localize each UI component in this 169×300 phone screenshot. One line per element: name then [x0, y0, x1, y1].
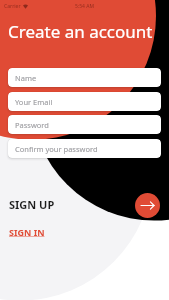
staticText: Name — [15, 73, 37, 83]
button[interactable]: Your Email — [8, 92, 161, 111]
button[interactable]: Name — [8, 68, 161, 87]
button[interactable]: Password — [8, 115, 161, 134]
staticText: Confirm your password — [15, 144, 98, 154]
button[interactable]: SIGN UP — [8, 196, 56, 213]
staticText: Password — [15, 120, 49, 130]
button[interactable]: Continue — [135, 193, 160, 218]
button[interactable]: SIGN IN — [8, 225, 46, 239]
staticText: Your Email — [15, 97, 53, 107]
staticText: 5:54 AM — [75, 3, 95, 10]
staticText: Carrier — [4, 3, 21, 10]
staticText: SIGN UP — [9, 197, 55, 212]
staticText: SIGN IN — [9, 226, 45, 238]
button[interactable]: Confirm your password — [8, 139, 161, 158]
staticText: Create an account — [8, 20, 153, 43]
